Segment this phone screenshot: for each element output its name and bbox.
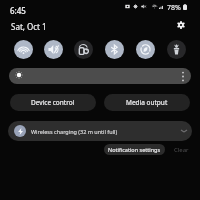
button[interactable]: Notification settings <box>104 144 165 155</box>
button[interactable]: Auto rotate <box>68 39 99 59</box>
button[interactable]: Flashlight <box>161 39 192 59</box>
button[interactable]: Wireless charging (32 m until full) <box>8 121 192 141</box>
staticText: Device control <box>31 98 75 107</box>
button[interactable]: Media output <box>104 94 190 111</box>
staticText: Wireless charging (32 m until full) <box>31 128 118 135</box>
staticText: 6:45 <box>10 5 26 16</box>
staticText: 78% <box>167 3 181 10</box>
button[interactable]: Clear <box>170 144 193 155</box>
button[interactable]: Wi-Fi <box>8 39 38 59</box>
staticText: Media output <box>126 98 168 107</box>
button[interactable]: Brightness <box>9 68 191 84</box>
button[interactable]: Device control <box>10 94 96 111</box>
button[interactable]: Sound off <box>38 39 68 59</box>
button[interactable]: Settings <box>173 17 189 33</box>
staticText: Notification settings <box>108 146 161 153</box>
staticText: Sat, Oct 1 <box>11 21 47 32</box>
staticText: Clear <box>174 146 189 154</box>
button[interactable]: Bluetooth <box>99 39 130 59</box>
button[interactable]: Sync <box>130 39 161 59</box>
